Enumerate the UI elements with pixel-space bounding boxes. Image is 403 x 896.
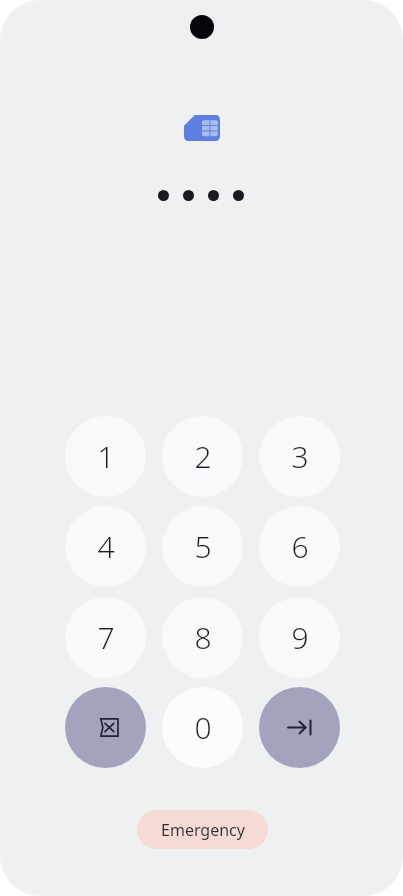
button[interactable]: 2 bbox=[162, 416, 243, 497]
button[interactable]: Enter bbox=[259, 687, 340, 768]
staticText: Emergency bbox=[161, 819, 245, 841]
staticText: 0 bbox=[194, 707, 212, 748]
button[interactable]: 1 bbox=[65, 416, 146, 497]
staticText: 2 bbox=[194, 436, 212, 477]
button[interactable]: 4 bbox=[65, 506, 146, 587]
staticText: 6 bbox=[291, 526, 309, 567]
staticText: 5 bbox=[194, 526, 212, 567]
button[interactable]: 0 bbox=[162, 687, 243, 768]
button[interactable]: Backspace bbox=[65, 687, 146, 768]
button[interactable]: Emergency bbox=[137, 810, 268, 849]
button[interactable]: 7 bbox=[65, 597, 146, 678]
staticText: 7 bbox=[97, 617, 115, 658]
button[interactable]: 3 bbox=[259, 416, 340, 497]
staticText: 8 bbox=[194, 617, 212, 658]
staticText: 9 bbox=[291, 617, 309, 658]
button[interactable]: 6 bbox=[259, 506, 340, 587]
staticText: 3 bbox=[291, 436, 309, 477]
staticText: 4 bbox=[97, 526, 115, 567]
button[interactable]: 5 bbox=[162, 506, 243, 587]
button[interactable]: 9 bbox=[259, 597, 340, 678]
staticText: 1 bbox=[97, 436, 115, 477]
button[interactable]: 8 bbox=[162, 597, 243, 678]
